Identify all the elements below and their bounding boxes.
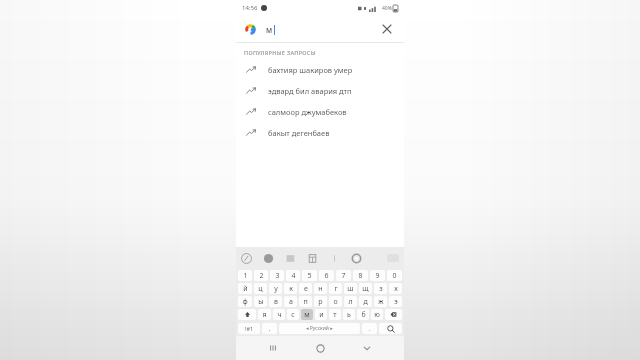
button[interactable]: 9 — [370, 270, 385, 281]
button[interactable]: Home — [310, 338, 330, 358]
button[interactable]: ь — [343, 309, 355, 320]
button[interactable]: п — [299, 296, 312, 307]
button[interactable]: т — [329, 309, 341, 320]
button[interactable]: д — [359, 296, 372, 307]
button[interactable]: у — [269, 283, 282, 294]
button[interactable]: !#1 — [238, 323, 260, 334]
staticText: 8 — [358, 271, 363, 281]
staticText: к — [289, 284, 293, 294]
button[interactable]: салмоор джумабеков — [236, 101, 404, 122]
button[interactable]: GIF — [285, 253, 296, 264]
button[interactable]: г — [329, 283, 342, 294]
staticText: 9 — [375, 271, 380, 281]
button[interactable]: ы — [254, 296, 267, 307]
button[interactable]: я — [258, 309, 271, 320]
button[interactable]: 2 — [254, 270, 268, 281]
staticText: у — [274, 284, 278, 294]
button[interactable]: л — [344, 296, 357, 307]
staticText: м — [304, 310, 310, 320]
button[interactable]: с — [287, 309, 299, 320]
button[interactable]: р — [314, 296, 327, 307]
button[interactable]: з — [374, 283, 387, 294]
staticText: л — [348, 297, 353, 307]
button[interactable]: ж — [374, 296, 387, 307]
button[interactable]: , — [262, 323, 277, 334]
button[interactable]: 3 — [270, 270, 284, 281]
staticText: 4 — [291, 271, 296, 281]
staticText: , — [269, 325, 271, 333]
staticText: 0 — [392, 271, 397, 281]
button[interactable]: 8 — [353, 270, 368, 281]
button[interactable]: а — [284, 296, 297, 307]
button[interactable]: Shift — [238, 309, 256, 320]
button[interactable]: 5 — [302, 270, 317, 281]
button[interactable]: Recents — [263, 338, 283, 358]
button[interactable]: ц — [254, 283, 267, 294]
staticText: ь — [347, 310, 351, 320]
staticText: ф — [242, 297, 248, 307]
button[interactable]: б — [357, 309, 369, 320]
button[interactable]: м — [236, 16, 404, 42]
staticText: р — [318, 297, 323, 307]
button[interactable]: Clipboard — [307, 253, 318, 264]
staticText: в — [274, 297, 278, 307]
button[interactable]: 1 — [238, 270, 252, 281]
button[interactable]: 7 — [336, 270, 351, 281]
button[interactable]: Clear search — [378, 20, 396, 38]
button[interactable]: щ — [359, 283, 372, 294]
staticText: и — [319, 310, 324, 320]
staticText: я — [262, 310, 267, 320]
staticText: а — [289, 297, 293, 307]
button[interactable]: 4 — [286, 270, 300, 281]
staticText: д — [363, 297, 368, 307]
staticText: !#1 — [245, 325, 254, 332]
staticText: . — [369, 325, 371, 333]
staticText: э — [394, 297, 398, 307]
staticText: эдвард бил авария дтп — [268, 86, 352, 96]
button[interactable]: Backspace — [385, 309, 402, 320]
button[interactable]: ю — [371, 309, 383, 320]
button[interactable]: Hide keyboard — [357, 338, 377, 358]
button[interactable]: 6 — [319, 270, 334, 281]
staticText: 14:56 — [242, 4, 258, 12]
button[interactable]: х — [389, 283, 402, 294]
button[interactable]: ш — [344, 283, 357, 294]
button[interactable]: е — [299, 283, 312, 294]
button[interactable]: н — [314, 283, 327, 294]
staticText: ш — [347, 284, 354, 294]
staticText: ж — [378, 297, 384, 307]
staticText: бакыт дегенбаев — [268, 128, 330, 138]
button[interactable]: Voice typing — [241, 253, 252, 264]
button[interactable]: Search — [379, 323, 402, 334]
button[interactable]: э — [389, 296, 402, 307]
staticText: салмоор джумабеков — [268, 107, 347, 117]
staticText: х — [394, 284, 398, 294]
button[interactable]: бахтияр шакиров умер — [236, 59, 404, 80]
staticText: с — [291, 310, 295, 320]
staticText: 40% — [382, 5, 392, 12]
button[interactable]: ф — [238, 296, 252, 307]
button[interactable]: . — [362, 323, 377, 334]
button[interactable]: эдвард бил авария дтп — [236, 80, 404, 101]
button[interactable]: ◂ Русский ▸ — [279, 323, 360, 334]
staticText: ч — [277, 310, 282, 320]
button[interactable]: бакыт дегенбаев — [236, 122, 404, 143]
button[interactable]: ч — [273, 309, 285, 320]
button[interactable]: Emoji — [263, 253, 274, 264]
button[interactable]: Text editing — [329, 253, 340, 264]
staticText: п — [303, 297, 308, 307]
button[interactable]: 0 — [387, 270, 402, 281]
button[interactable]: о — [329, 296, 342, 307]
staticText: щ — [362, 284, 369, 294]
button[interactable]: й — [238, 283, 252, 294]
button[interactable]: Settings — [351, 253, 362, 264]
staticText: 3 — [275, 271, 280, 281]
button[interactable]: м — [301, 309, 313, 320]
staticText: м — [266, 24, 273, 35]
button[interactable]: и — [315, 309, 327, 320]
staticText: з — [379, 284, 383, 294]
button[interactable]: к — [284, 283, 297, 294]
staticText: е — [304, 284, 308, 294]
button[interactable]: в — [269, 296, 282, 307]
